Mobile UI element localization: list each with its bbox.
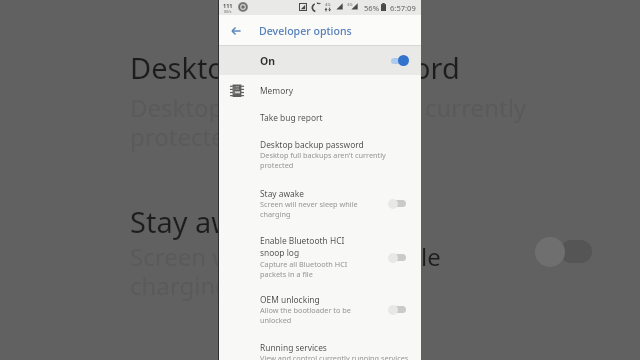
button[interactable]: On <box>219 46 421 75</box>
staticText: Desktop <box>130 48 243 87</box>
staticText: protected <box>130 120 240 153</box>
staticText: 56% <box>364 3 379 13</box>
staticText: 111 <box>223 2 233 9</box>
staticText: t currently <box>410 91 527 124</box>
staticText: Desktop backup password <box>260 139 364 150</box>
staticText: On <box>260 54 276 68</box>
button[interactable]: Memory <box>219 75 421 105</box>
button[interactable]: Back <box>219 15 252 46</box>
staticText: OEM unlocking <box>260 294 320 305</box>
staticText: Desktop full backups aren't currently pr… <box>260 150 386 170</box>
button[interactable]: Stay awake <box>219 179 421 227</box>
staticText: Capture all Bluetooth HCI packets in a f… <box>260 259 348 279</box>
staticText: charging <box>130 269 231 302</box>
staticText: Stay awake <box>260 188 305 199</box>
staticText: Take bug report <box>260 112 323 123</box>
staticText: Screen will never sleep while charging <box>260 199 358 219</box>
staticText: Screen will <box>130 240 250 273</box>
staticText: Developer options <box>259 24 352 38</box>
staticText: Stay awake <box>130 202 283 241</box>
button[interactable]: OEM unlocking <box>219 286 421 332</box>
button[interactable]: Desktop backup password <box>219 131 421 179</box>
button[interactable]: Take bug report <box>219 105 421 131</box>
staticText: Running services <box>260 342 327 353</box>
staticText: Enable Bluetooth HCI snoop log <box>260 235 345 259</box>
button[interactable]: Enable Bluetooth HCI snoop log <box>219 227 421 286</box>
staticText: 3G <box>347 2 353 8</box>
staticText: ord <box>413 48 460 87</box>
staticText: le <box>421 240 441 273</box>
button[interactable]: Running services <box>219 332 421 360</box>
staticText: KB/s <box>224 9 232 14</box>
staticText: 4G <box>325 2 331 8</box>
staticText: Memory <box>260 85 294 96</box>
staticText: View and control currently running servi… <box>260 353 409 360</box>
staticText: Desktop <box>130 91 224 124</box>
staticText: 6:57:09 <box>390 3 416 13</box>
staticText: Allow the bootloader to be unlocked <box>260 305 351 325</box>
